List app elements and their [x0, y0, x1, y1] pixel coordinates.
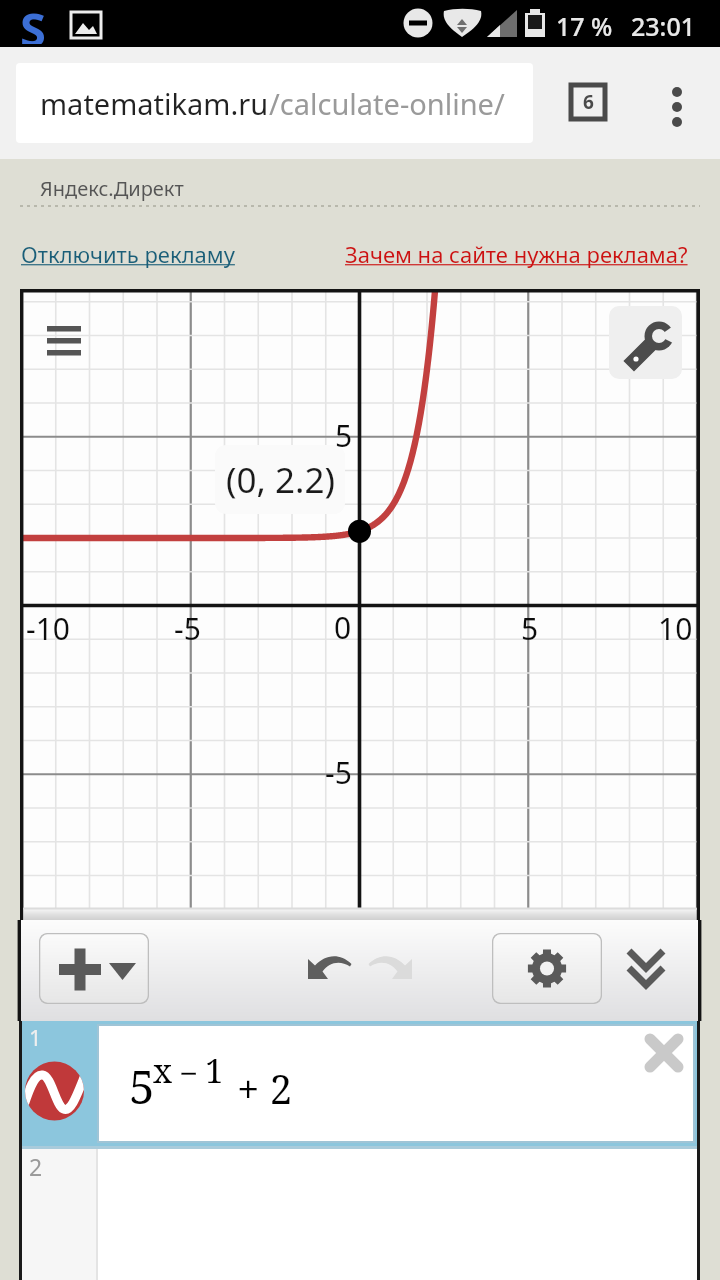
staticText: 5	[129, 1055, 155, 1118]
button[interactable]: 1	[21, 1021, 698, 1146]
button[interactable]: Collapse keypad	[624, 946, 668, 988]
button[interactable]: Menu	[47, 326, 101, 368]
button[interactable]: matematikam.ru	[16, 63, 533, 143]
staticText: Отключить рекламу	[21, 239, 235, 269]
staticText: -10	[26, 608, 70, 649]
button[interactable]: More options	[650, 75, 704, 129]
staticText: (0, 2.2)	[226, 456, 335, 504]
staticText: 1	[29, 1022, 42, 1052]
staticText: 2	[29, 1151, 43, 1182]
button[interactable]: Graph settings	[492, 933, 602, 1004]
staticText: 17 %	[556, 9, 613, 43]
button[interactable]: Delete expression	[645, 1034, 683, 1072]
staticText: Яндекс.Директ	[40, 175, 184, 202]
staticText: 5	[335, 415, 353, 456]
staticText: + 2	[237, 1061, 293, 1115]
staticText: S	[20, 0, 46, 44]
staticText: 0	[334, 607, 352, 648]
button[interactable]: Settings	[609, 306, 682, 379]
staticText: 23:01	[631, 9, 696, 43]
button[interactable]: 2	[21, 1146, 698, 1280]
button[interactable]: Redo	[362, 943, 420, 987]
button[interactable]: Отключить рекламу	[21, 239, 235, 269]
button[interactable]: Зачем на сайте нужна реклама?	[345, 239, 688, 269]
button[interactable]: Tabs	[563, 77, 613, 127]
staticText: Зачем на сайте нужна реклама?	[345, 239, 688, 269]
staticText: -5	[174, 608, 201, 649]
button[interactable]: Add expression	[39, 933, 149, 1004]
button[interactable]: Undo	[298, 943, 356, 987]
staticText: matematikam.ru	[40, 84, 269, 123]
staticText: 5	[521, 608, 539, 649]
staticText: 10	[658, 608, 693, 649]
staticText: x－1	[153, 1048, 224, 1093]
staticText: -5	[325, 752, 352, 793]
staticText: 6	[583, 89, 594, 115]
staticText: /calculate-online/	[269, 84, 505, 123]
